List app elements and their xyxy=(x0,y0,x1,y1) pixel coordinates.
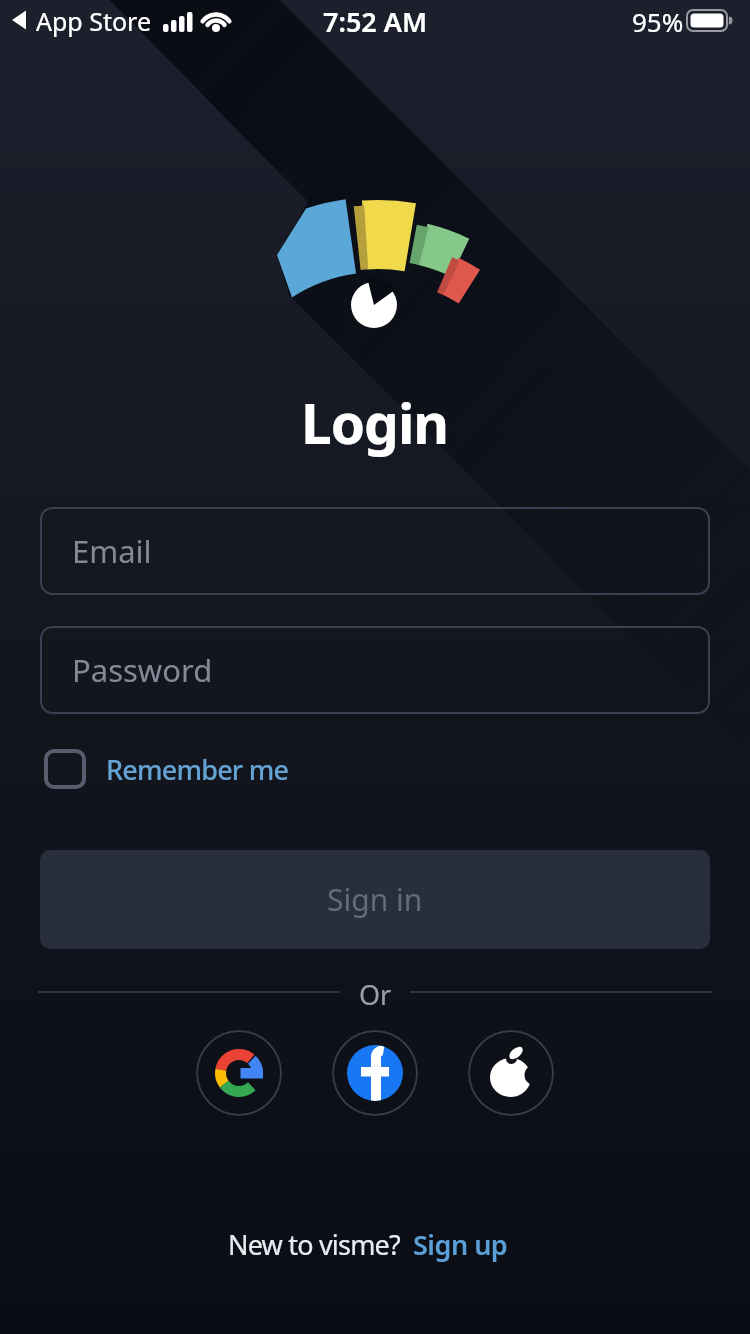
button[interactable] xyxy=(332,1030,418,1116)
button[interactable]: Sign in xyxy=(40,850,710,949)
button[interactable]: Password xyxy=(40,626,710,714)
staticText: 7:52 AM xyxy=(323,3,428,40)
staticText: Or xyxy=(359,976,392,1013)
button[interactable] xyxy=(196,1030,282,1116)
button[interactable] xyxy=(468,1030,554,1116)
button[interactable]: Email xyxy=(40,507,710,595)
button[interactable]: Sign up xyxy=(413,1226,508,1263)
button[interactable]: Remember me xyxy=(44,749,289,789)
staticText: 95% xyxy=(632,4,684,39)
staticText: Password xyxy=(72,649,213,691)
staticText: App Store xyxy=(36,4,152,38)
staticText: New to visme? xyxy=(228,1226,400,1263)
staticText: Login xyxy=(301,385,449,460)
staticText: Remember me xyxy=(106,751,289,788)
staticText: Sign up xyxy=(413,1226,508,1263)
staticText: Email xyxy=(72,530,152,572)
staticText: Sign in xyxy=(327,879,423,920)
